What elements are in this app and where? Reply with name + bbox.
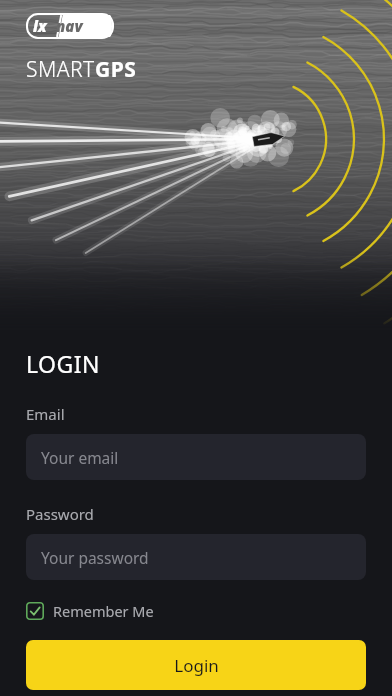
button[interactable]: Your password <box>26 534 366 580</box>
staticText: nav <box>56 16 83 36</box>
staticText: Email <box>26 404 65 424</box>
staticText: Remember Me <box>53 601 154 621</box>
staticText: Your email <box>41 447 119 468</box>
staticText: Login <box>174 654 219 677</box>
button[interactable]: Login <box>26 640 366 690</box>
button[interactable]: Remember Me <box>26 601 154 621</box>
staticText: GPS <box>95 55 137 84</box>
staticText: SMART <box>26 55 95 84</box>
button[interactable]: Your email <box>26 434 366 480</box>
staticText: Your password <box>41 547 149 568</box>
staticText: lx <box>33 16 47 36</box>
staticText: Password <box>26 504 94 524</box>
staticText: LOGIN <box>26 348 101 379</box>
